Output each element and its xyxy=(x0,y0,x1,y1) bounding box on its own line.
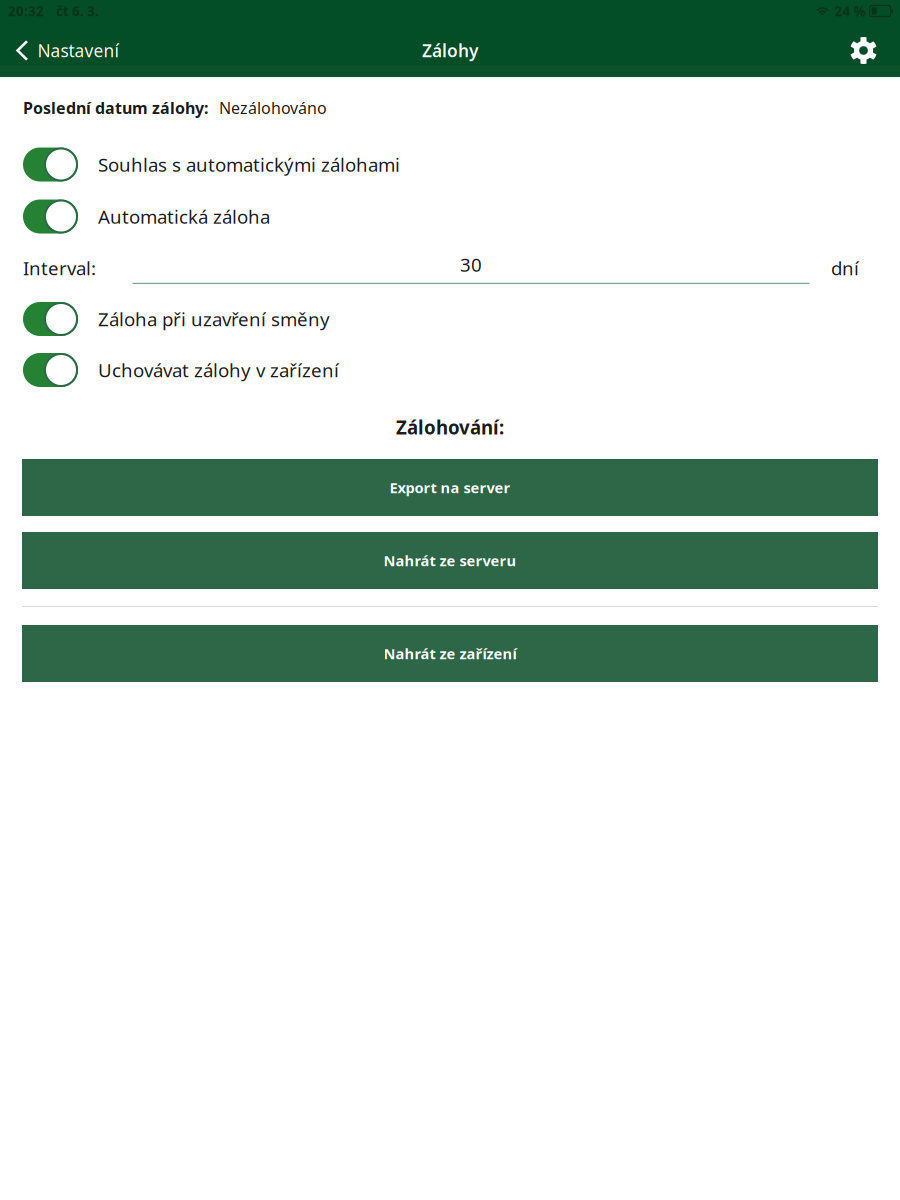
staticText: Export na server xyxy=(389,478,510,497)
staticText: 24 % xyxy=(834,2,865,20)
staticText: Interval: xyxy=(23,256,96,280)
staticText: Nastavení xyxy=(37,39,118,62)
button[interactable]: Uchovávat zálohy v zařízení xyxy=(0,344,900,395)
staticText: Záloha při uzavření směny xyxy=(98,307,330,331)
staticText: čt 6. 3. xyxy=(56,2,99,20)
staticText: Nezálohováno xyxy=(219,97,327,118)
button[interactable]: Automatická záloha xyxy=(0,190,900,242)
staticText: 20:32 xyxy=(8,2,44,20)
staticText: 30 xyxy=(460,252,482,277)
staticText: Nahrát ze serveru xyxy=(383,551,516,570)
staticText: Nahrát ze zařízení xyxy=(383,644,516,663)
staticText: dní xyxy=(831,256,859,280)
staticText: Automatická záloha xyxy=(98,204,270,229)
button[interactable]: Nahrát ze serveru xyxy=(22,532,878,589)
button[interactable]: Souhlas s automatickými zálohami xyxy=(0,138,900,190)
staticText: Poslední datum zálohy: xyxy=(23,97,208,118)
button[interactable]: Záloha při uzavření směny xyxy=(0,293,900,344)
button[interactable]: Nastavení xyxy=(0,24,132,77)
button[interactable]: Export na server xyxy=(22,459,878,516)
staticText: Zálohování: xyxy=(396,415,504,440)
staticText: Uchovávat zálohy v zařízení xyxy=(98,358,339,382)
staticText: Souhlas s automatickými zálohami xyxy=(98,152,400,177)
button[interactable]: Settings xyxy=(836,24,900,77)
button[interactable]: Nahrát ze zařízení xyxy=(22,625,878,682)
staticText: Zálohy xyxy=(422,39,478,62)
